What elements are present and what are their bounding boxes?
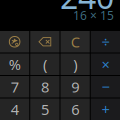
button[interactable]: 7 <box>0 76 29 97</box>
staticText: ÷ <box>101 32 109 51</box>
button[interactable]: % <box>0 53 29 75</box>
button[interactable]: 8 <box>30 76 59 97</box>
staticText: 6 <box>71 99 79 119</box>
staticText: ( <box>43 54 47 74</box>
staticText: C <box>71 32 80 51</box>
button[interactable]: × <box>91 53 120 75</box>
staticText: × <box>101 54 109 74</box>
button[interactable]: ( <box>30 53 59 75</box>
staticText: 5 <box>41 99 49 119</box>
button[interactable]: ÷ <box>91 31 120 52</box>
staticText: % <box>9 54 21 74</box>
staticText: 8 <box>41 77 49 96</box>
button[interactable]: 4 <box>0 98 29 120</box>
button[interactable]: C <box>60 31 90 52</box>
button[interactable]: Delete <box>30 31 59 52</box>
staticText: 7 <box>11 77 19 96</box>
staticText: ) <box>73 54 77 74</box>
button[interactable]: 9 <box>60 76 90 97</box>
button[interactable]: + <box>91 98 120 120</box>
staticText: 9 <box>71 77 79 96</box>
staticText: 4 <box>11 99 19 119</box>
staticText: 16 × 15 <box>73 7 114 23</box>
button[interactable]: 6 <box>60 98 90 120</box>
staticText: + <box>101 99 109 119</box>
staticText: 240 <box>60 0 114 18</box>
button[interactable]: 5 <box>30 98 59 120</box>
button[interactable]: Theme <box>0 31 29 52</box>
button[interactable]: − <box>91 76 120 97</box>
button[interactable]: ) <box>60 53 90 75</box>
staticText: − <box>101 77 109 96</box>
